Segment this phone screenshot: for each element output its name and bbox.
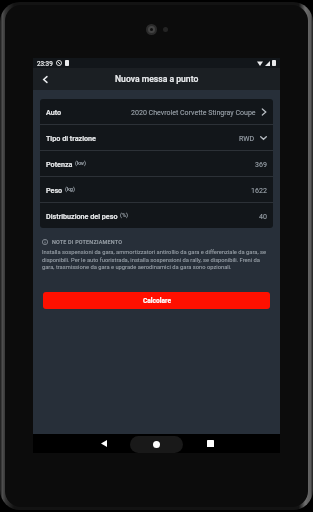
staticText: Nuova messa a punto <box>115 74 199 84</box>
staticText: (kw) <box>75 160 87 167</box>
staticText: Potenza <box>46 160 73 168</box>
staticText: 23:39 <box>37 60 53 67</box>
button[interactable]: Potenza <box>40 151 273 176</box>
staticText: (%) <box>120 212 129 219</box>
staticText: 369 <box>255 160 267 168</box>
button[interactable]: Distribuzione del peso <box>40 203 273 228</box>
button[interactable]: Home <box>130 436 183 453</box>
staticText: Distribuzione del peso <box>46 212 118 220</box>
button[interactable]: Calcolare <box>43 292 270 309</box>
staticText: (kg) <box>65 186 75 193</box>
staticText: 40 <box>259 212 267 220</box>
staticText: 1622 <box>251 186 267 194</box>
staticText: Tipo di trazione <box>46 134 96 142</box>
staticText: Calcolare <box>143 297 171 305</box>
staticText: 2020 Chevrolet Corvette Stingray Coupe <box>131 108 256 116</box>
button[interactable]: Auto <box>40 99 273 124</box>
staticText: Peso <box>46 186 63 194</box>
button[interactable]: Tipo di trazione <box>40 125 273 150</box>
staticText: Installa sospensioni da gara, ammortizza… <box>42 249 270 270</box>
button[interactable]: Back <box>91 434 117 453</box>
staticText: Auto <box>46 108 62 116</box>
staticText: NOTE DI POTENZIAMENTO <box>52 239 123 245</box>
button[interactable]: Recent apps <box>197 434 223 453</box>
button[interactable]: Back <box>35 68 56 90</box>
button[interactable]: Peso <box>40 177 273 202</box>
staticText: RWD <box>239 134 255 142</box>
